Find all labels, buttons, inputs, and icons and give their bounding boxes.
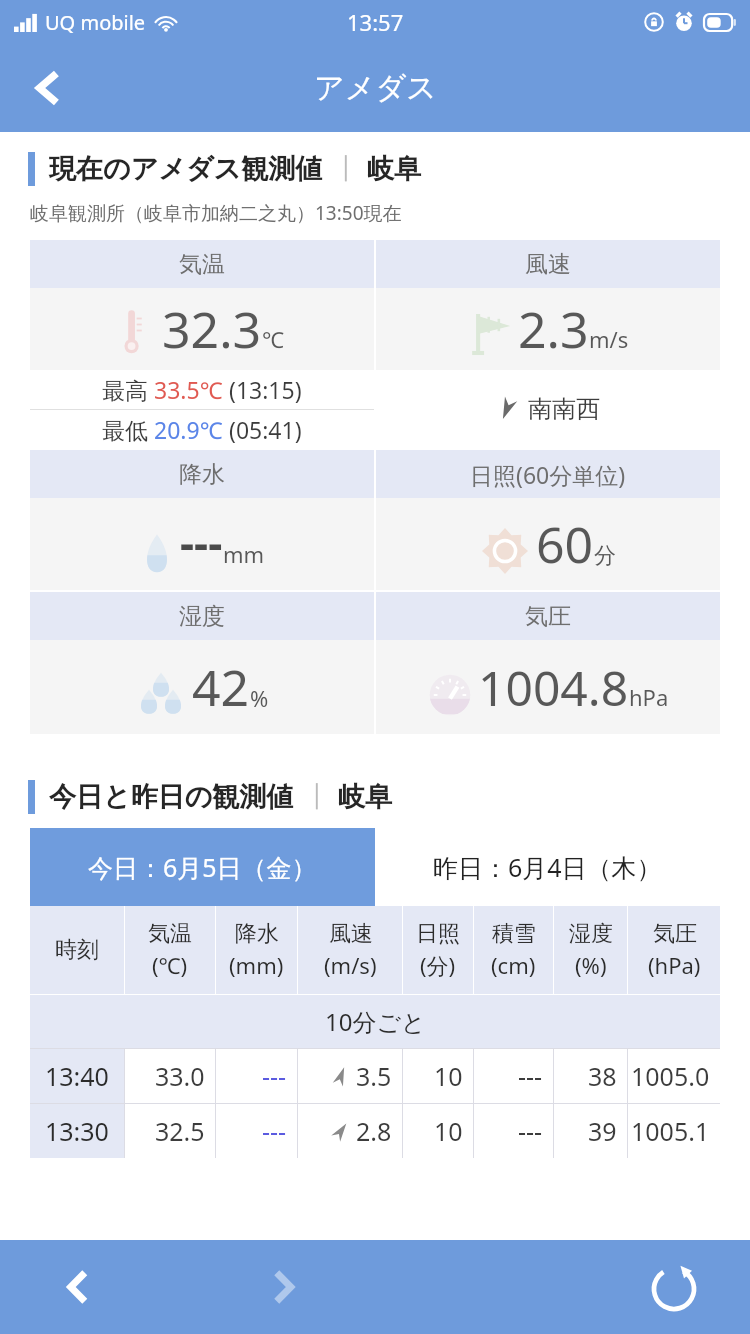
staticText: 湿度 — [569, 920, 613, 948]
staticText: 20.9℃ — [154, 414, 223, 445]
staticText: (分) — [420, 950, 456, 980]
staticText: 降水 — [235, 920, 279, 948]
staticText: 日照(60分単位) — [470, 459, 626, 490]
staticText: 1005.0 — [631, 1059, 710, 1093]
staticText: 10 — [434, 1114, 463, 1148]
staticText: (hPa) — [648, 950, 701, 980]
staticText: 時刻 — [55, 936, 99, 964]
staticText: 日照 — [416, 920, 460, 948]
staticText: --- — [518, 1114, 543, 1148]
staticText: m/s — [589, 324, 629, 354]
staticText: 昨日：6月4日（木） — [433, 850, 662, 884]
staticText: ℃ — [262, 324, 284, 354]
staticText: 60 — [536, 510, 594, 578]
staticText: 今日と昨日の観測値 — [49, 780, 294, 814]
staticText: 32.5 — [155, 1114, 205, 1148]
staticText: % — [250, 683, 269, 713]
staticText: 風速 — [525, 250, 571, 279]
staticText: 13:30 — [45, 1114, 109, 1148]
staticText: hPa — [629, 682, 669, 712]
staticText: 3.5 — [356, 1059, 392, 1093]
staticText: 13:57 — [347, 7, 404, 37]
staticText: mm — [223, 539, 265, 569]
button[interactable]: 今日：6月5日（金） — [30, 828, 375, 906]
button[interactable]: 昨日：6月4日（木） — [375, 828, 720, 906]
staticText: アメダス — [314, 69, 437, 107]
staticText: (mm) — [229, 950, 284, 980]
staticText: 湿度 — [179, 602, 225, 631]
staticText: (%) — [575, 950, 607, 980]
staticText: 風速 — [329, 920, 373, 948]
staticText: 39 — [588, 1114, 617, 1148]
button[interactable]: Reload — [634, 1247, 714, 1327]
staticText: 32.3 — [162, 295, 262, 363]
staticText: 42 — [192, 653, 250, 721]
staticText: --- — [180, 512, 223, 572]
staticText: 気温 — [179, 250, 225, 279]
staticText: UQ mobile — [45, 9, 146, 36]
staticText: 33.5℃ — [154, 374, 223, 405]
staticText: 10分ごと — [325, 1005, 426, 1038]
staticText: (13:15) — [223, 374, 302, 405]
staticText: (℃) — [152, 950, 188, 980]
staticText: --- — [518, 1059, 543, 1093]
staticText: 積雪 — [492, 920, 536, 948]
staticText: --- — [262, 1059, 287, 1093]
staticText: 南南西 — [528, 394, 600, 424]
button[interactable]: Previous — [40, 1249, 116, 1325]
staticText: 気圧 — [653, 920, 697, 948]
staticText: 2.8 — [356, 1114, 392, 1148]
staticText: (05:41) — [223, 414, 302, 445]
button[interactable]: Back — [0, 44, 96, 132]
staticText: 降水 — [179, 460, 225, 489]
staticText: 33.0 — [155, 1059, 205, 1093]
staticText: 岐阜 — [338, 780, 392, 814]
staticText: 現在のアメダス観測値 — [49, 152, 323, 186]
staticText: 10 — [434, 1059, 463, 1093]
staticText: 今日：6月5日（金） — [88, 850, 317, 884]
staticText: 岐阜 — [367, 152, 421, 186]
staticText: │ — [310, 784, 324, 810]
staticText: 岐阜観測所（岐阜市加納二之丸）13:50現在 — [30, 200, 402, 226]
button[interactable]: Next — [245, 1249, 321, 1325]
staticText: 1004.8 — [478, 655, 629, 720]
staticText: │ — [339, 156, 353, 182]
staticText: 1005.1 — [631, 1114, 710, 1148]
staticText: 気圧 — [525, 602, 571, 631]
staticText: 分 — [594, 542, 616, 570]
staticText: (cm) — [491, 950, 536, 980]
staticText: 13:40 — [45, 1059, 109, 1093]
staticText: --- — [262, 1114, 287, 1148]
staticText: (m/s) — [324, 950, 377, 980]
staticText: 2.3 — [518, 295, 589, 363]
staticText: 気温 — [148, 920, 192, 948]
staticText: 最低 — [102, 414, 154, 445]
staticText: 最高 — [102, 374, 154, 405]
staticText: 38 — [588, 1059, 617, 1093]
